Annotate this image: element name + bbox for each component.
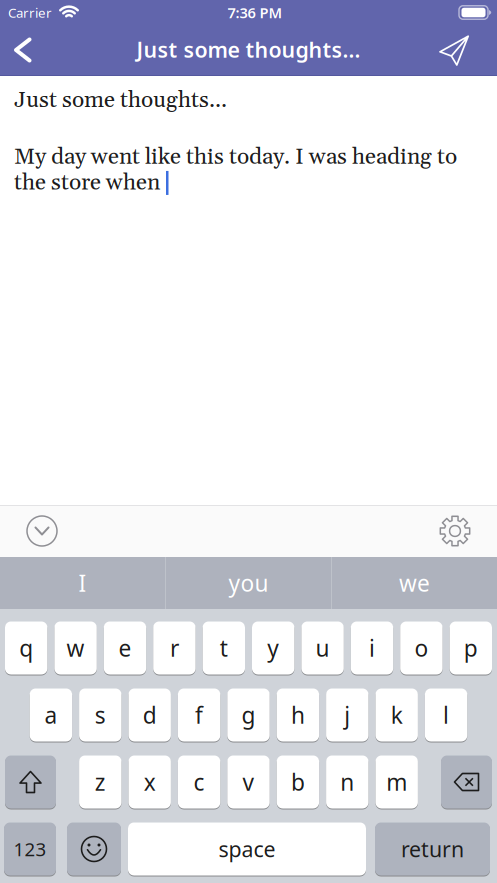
staticText: m: [386, 767, 407, 797]
staticText: a: [44, 700, 57, 730]
staticText: g: [241, 700, 255, 730]
button[interactable]: e: [104, 621, 146, 675]
staticText: return: [401, 835, 464, 863]
staticText: 7:36 PM: [227, 3, 282, 22]
button[interactable]: we: [332, 557, 497, 609]
button[interactable]: w: [54, 621, 97, 675]
staticText: p: [464, 633, 478, 663]
staticText: e: [118, 633, 131, 663]
button[interactable]: c: [178, 755, 220, 809]
staticText: b: [291, 767, 305, 797]
button[interactable]: d: [128, 688, 171, 742]
staticText: k: [391, 700, 403, 730]
button[interactable]: o: [400, 621, 443, 675]
staticText: j: [344, 700, 350, 730]
button[interactable]: x: [128, 755, 171, 809]
staticText: l: [443, 700, 449, 730]
button[interactable]: g: [227, 688, 270, 742]
button[interactable]: z: [79, 755, 121, 809]
staticText: y: [267, 633, 279, 663]
button[interactable]: a: [30, 688, 72, 742]
staticText: the store when: [14, 169, 160, 197]
staticText: z: [95, 767, 106, 797]
button[interactable]: 123: [4, 822, 56, 876]
staticText: Just some thoughts...: [136, 35, 360, 64]
button[interactable]: Delete: [441, 755, 492, 809]
button[interactable]: m: [375, 755, 418, 809]
staticText: we: [399, 568, 430, 598]
staticText: w: [67, 633, 85, 663]
staticText: h: [291, 700, 305, 730]
button[interactable]: h: [277, 688, 319, 742]
staticText: u: [316, 633, 330, 663]
staticText: My day went like this today. I was headi…: [14, 143, 457, 172]
button[interactable]: k: [375, 688, 418, 742]
button[interactable]: Shift: [5, 755, 56, 809]
button[interactable]: s: [79, 688, 121, 742]
button[interactable]: p: [450, 621, 492, 675]
staticText: 123: [13, 837, 46, 861]
staticText: you: [228, 568, 268, 598]
button[interactable]: r: [153, 621, 196, 675]
staticText: q: [19, 633, 33, 663]
button[interactable]: b: [277, 755, 319, 809]
button[interactable]: Back: [0, 28, 29, 75]
button[interactable]: l: [425, 688, 467, 742]
staticText: v: [242, 767, 254, 797]
staticText: Just some thoughts...: [14, 86, 227, 115]
staticText: x: [144, 767, 156, 797]
staticText: s: [95, 700, 106, 730]
staticText: r: [170, 633, 179, 663]
button[interactable]: space: [128, 822, 366, 876]
staticText: o: [414, 633, 428, 663]
staticText: n: [340, 767, 354, 797]
button[interactable]: t: [203, 621, 245, 675]
button[interactable]: you: [166, 557, 331, 609]
button[interactable]: q: [5, 621, 47, 675]
button[interactable]: n: [326, 755, 368, 809]
staticText: d: [143, 700, 157, 730]
button[interactable]: Send: [440, 28, 497, 76]
button[interactable]: v: [227, 755, 270, 809]
button[interactable]: u: [301, 621, 344, 675]
button[interactable]: i: [351, 621, 393, 675]
button[interactable]: I: [0, 557, 165, 609]
staticText: f: [195, 700, 203, 730]
button[interactable]: Settings: [440, 516, 497, 546]
button[interactable]: Emoji: [67, 822, 121, 876]
button[interactable]: f: [178, 688, 220, 742]
staticText: c: [194, 767, 205, 797]
staticText: t: [220, 633, 228, 663]
staticText: space: [218, 835, 275, 863]
staticText: Carrier: [8, 4, 52, 21]
button[interactable]: j: [326, 688, 368, 742]
button[interactable]: Dismiss keyboard: [0, 516, 57, 546]
staticText: i: [369, 633, 375, 663]
button[interactable]: y: [252, 621, 294, 675]
staticText: I: [78, 568, 86, 598]
button[interactable]: return: [375, 822, 490, 876]
